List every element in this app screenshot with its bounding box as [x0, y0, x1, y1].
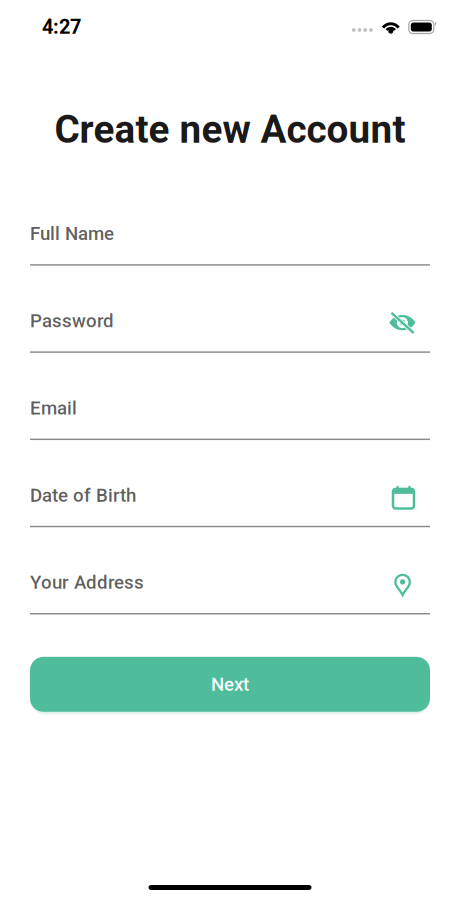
- button[interactable]: Show password: [389, 307, 430, 334]
- button[interactable]: Password: [30, 310, 114, 332]
- staticText: Date of Birth: [30, 484, 136, 506]
- staticText: Next: [211, 673, 249, 695]
- staticText: Your Address: [30, 572, 144, 593]
- button[interactable]: Date of Birth: [30, 484, 136, 506]
- button[interactable]: Pick date: [392, 481, 430, 509]
- staticText: Full Name: [30, 223, 114, 245]
- button[interactable]: Your Address: [30, 572, 144, 593]
- staticText: Email: [30, 397, 77, 419]
- button[interactable]: Next: [30, 655, 430, 713]
- staticText: Password: [30, 310, 114, 332]
- staticText: Create new Account: [54, 107, 405, 152]
- button[interactable]: Email: [30, 397, 77, 419]
- button[interactable]: Full Name: [30, 223, 114, 245]
- staticText: 4:27: [42, 15, 81, 39]
- button[interactable]: Use current location: [394, 568, 430, 596]
